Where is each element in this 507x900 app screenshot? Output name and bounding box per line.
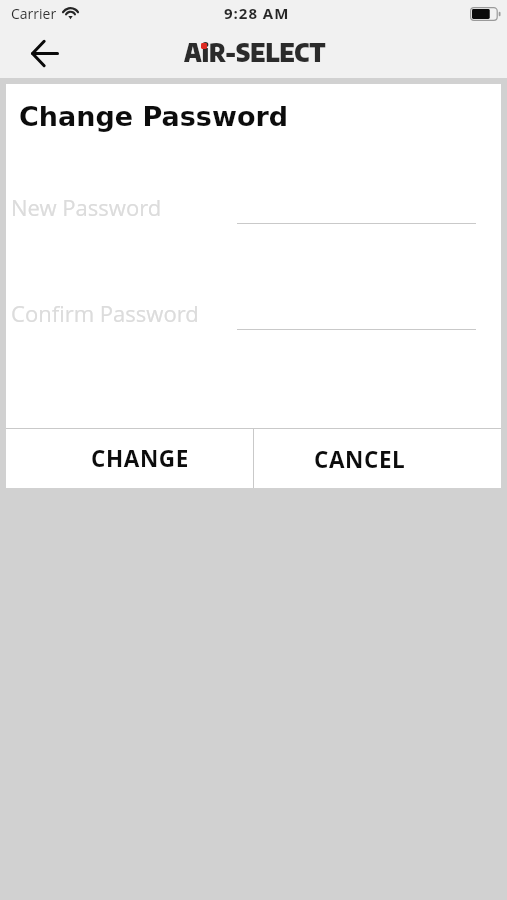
staticText: Confirm Password: [11, 298, 199, 328]
button[interactable]: CHANGE: [6, 429, 253, 488]
staticText: CHANGE: [91, 443, 189, 474]
staticText: AiR-SELECT: [184, 36, 326, 67]
staticText: Change Password: [19, 101, 289, 132]
button[interactable]: CANCEL: [254, 429, 501, 488]
staticText: New Password: [11, 192, 162, 222]
button[interactable]: Back: [21, 30, 69, 78]
staticText: CANCEL: [314, 444, 406, 475]
staticText: 9:28 AM: [224, 3, 290, 23]
staticText: Carrier: [11, 4, 57, 23]
